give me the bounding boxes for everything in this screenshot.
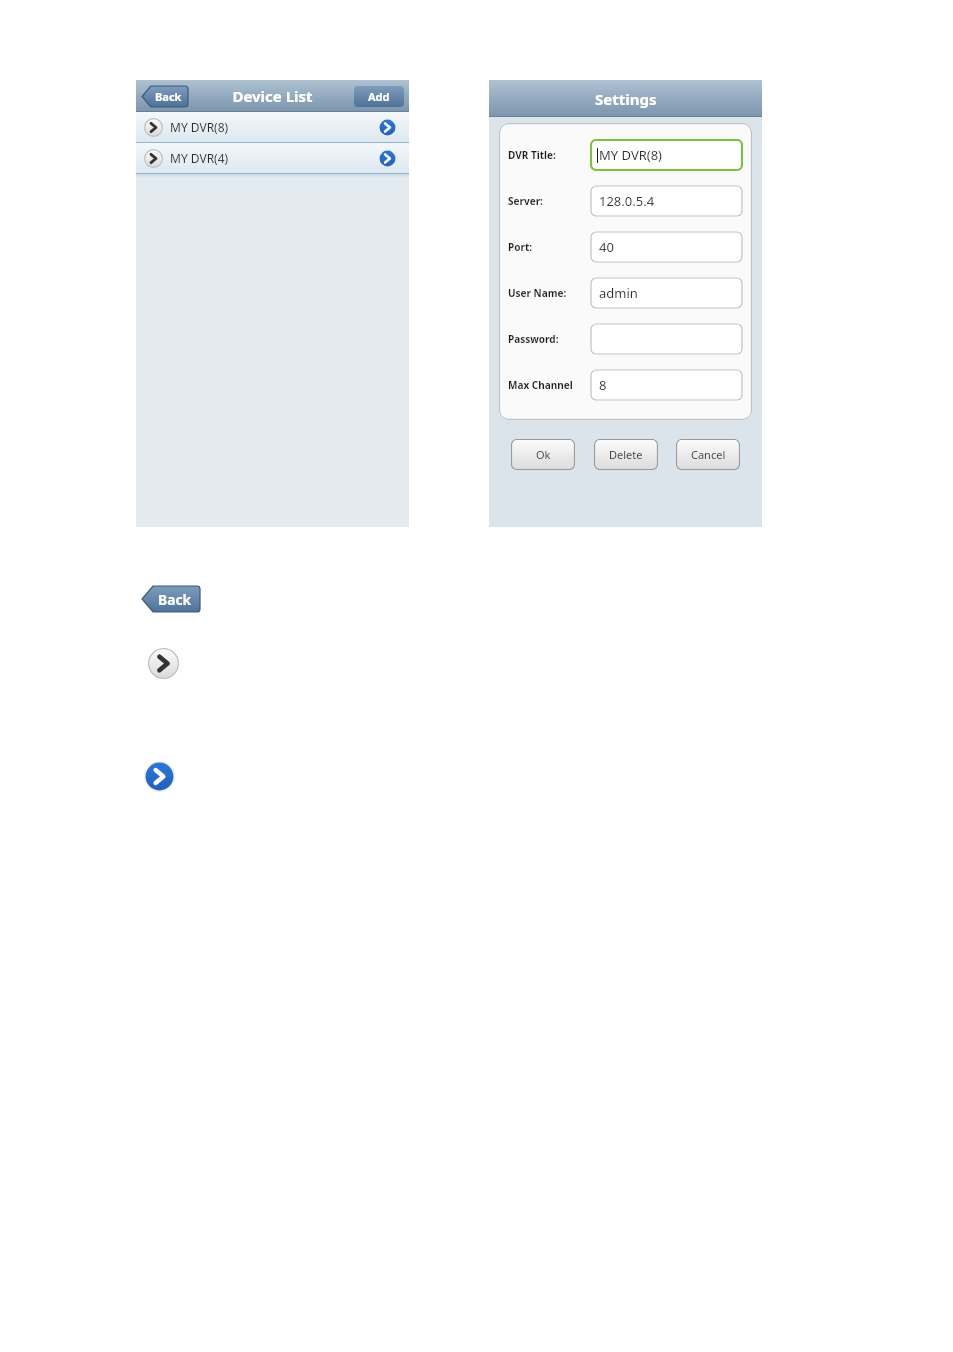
button[interactable]: DVR Title: — [508, 132, 743, 178]
button[interactable]: Server: — [508, 178, 743, 224]
staticText: Settings — [595, 89, 657, 109]
button[interactable]: MY DVR(4) — [136, 143, 409, 173]
button[interactable]: User Name: — [508, 270, 743, 316]
button[interactable]: Cancel — [676, 439, 740, 470]
staticText: Add — [368, 89, 390, 104]
staticText: Back — [158, 590, 192, 609]
button[interactable]: Delete — [594, 439, 658, 470]
staticText: MY DVR(4) — [170, 150, 229, 166]
button[interactable]: Add — [354, 86, 404, 107]
staticText: Port: — [508, 240, 590, 254]
staticText: Ok — [536, 447, 551, 462]
staticText: admin — [599, 284, 638, 302]
staticText: 8 — [599, 376, 607, 394]
staticText: 40 — [599, 238, 614, 256]
staticText: 128.0.5.4 — [599, 192, 655, 210]
staticText: MY DVR(8) — [599, 146, 663, 164]
button[interactable]: Port: — [508, 224, 743, 270]
staticText: Password: — [508, 332, 590, 346]
button[interactable]: Ok — [511, 439, 575, 470]
staticText: Device List — [232, 86, 313, 106]
button[interactable]: Back — [142, 586, 200, 612]
staticText: Max Channel — [508, 378, 590, 392]
button[interactable]: MY DVR(8) — [136, 112, 409, 142]
staticText: MY DVR(8) — [170, 119, 229, 135]
staticText: Cancel — [691, 447, 726, 462]
button[interactable]: Password: — [508, 316, 743, 362]
staticText: User Name: — [508, 286, 590, 300]
staticText: Back — [155, 89, 182, 104]
button[interactable]: Back — [142, 86, 188, 107]
staticText: DVR Title: — [508, 148, 590, 162]
button[interactable]: Max Channel — [508, 362, 743, 408]
staticText: Server: — [508, 194, 590, 208]
staticText: Delete — [609, 447, 643, 462]
